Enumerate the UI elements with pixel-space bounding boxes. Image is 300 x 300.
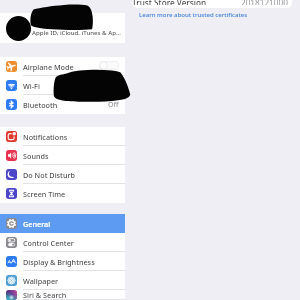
staticText: Sounds [23,151,49,161]
staticText: Apple ID, iCloud, iTunes & Ap... [32,28,121,36]
button[interactable]: Do Not Disturb [0,165,125,184]
button[interactable]: Siri & Search [0,290,125,300]
button[interactable]: Airplane Mode toggle [99,61,119,70]
staticText: Trust Store Version [132,0,207,5]
staticText: Do Not Disturb [23,170,75,180]
staticText: Learn more about trusted certificates [139,11,248,19]
button[interactable]: Notifications [0,127,125,146]
button[interactable]: Apple ID, iCloud, iTunes & Ap... [0,13,125,43]
button[interactable]: Control Center [0,233,125,252]
staticText: Siri & Search [23,290,67,300]
staticText: Off [108,100,119,110]
staticText: Screen Time [23,189,66,199]
staticText: Notifications [23,132,68,142]
staticText: Airplane Mode [23,62,74,72]
button[interactable]: General [0,214,125,233]
staticText: 2018121000 [241,0,288,5]
staticText: Bluetooth [23,100,58,110]
staticText: Display & Brightness [23,257,95,267]
button[interactable]: Display & Brightness [0,252,125,271]
button[interactable]: Screen Time [0,184,125,203]
button[interactable]: Airplane Mode [0,57,125,76]
staticText: Control Center [23,238,74,248]
staticText: Wi-Fi [23,81,40,91]
button[interactable]: Sounds [0,146,125,165]
staticText: Wallpaper [23,276,59,286]
button[interactable]: Wallpaper [0,271,125,290]
button[interactable]: Bluetooth [0,95,125,114]
button[interactable]: Wi-Fi [0,76,125,95]
button[interactable]: Learn more about trusted certificates [139,11,248,19]
button[interactable]: Trust Store Version [132,0,292,8]
staticText: General [23,219,51,229]
